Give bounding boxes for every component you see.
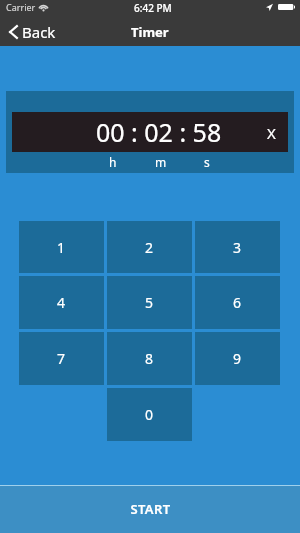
button[interactable]: 5 (107, 276, 192, 329)
staticText: m (155, 154, 167, 170)
staticText: Timer (131, 23, 169, 41)
button[interactable]: 3 (195, 221, 280, 273)
button[interactable]: 4 (19, 276, 104, 329)
button[interactable]: START (0, 486, 300, 533)
button[interactable]: 1 (19, 221, 104, 273)
staticText: h (109, 154, 117, 170)
staticText: 1 (57, 238, 66, 257)
button[interactable]: 0 (107, 388, 192, 441)
button[interactable]: 2 (107, 221, 192, 273)
button[interactable]: Clear (259, 120, 283, 144)
staticText: Carrier (6, 1, 36, 13)
staticText: 6:42 PM (134, 1, 172, 15)
staticText: 5 (145, 293, 154, 312)
button[interactable]: 9 (195, 332, 280, 385)
button[interactable]: 7 (19, 332, 104, 385)
button[interactable]: Back (0, 18, 62, 46)
staticText: 3 (233, 238, 242, 257)
staticText: 0 (145, 405, 154, 424)
staticText: 9 (233, 349, 242, 368)
button[interactable]: 8 (107, 332, 192, 385)
staticText: 2 (145, 238, 154, 257)
staticText: s (204, 154, 210, 170)
staticText: 8 (145, 349, 154, 368)
staticText: 6 (233, 293, 242, 312)
staticText: START (130, 500, 171, 518)
staticText: 7 (57, 349, 66, 368)
staticText: 4 (57, 293, 66, 312)
staticText: 00 : 02 : 58 (96, 115, 222, 149)
staticText: X (267, 123, 276, 143)
staticText: Back (22, 22, 56, 42)
button[interactable]: 6 (195, 276, 280, 329)
